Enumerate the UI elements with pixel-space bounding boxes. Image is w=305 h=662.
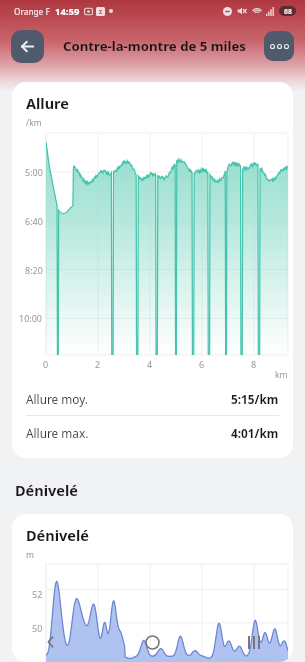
staticText: 50	[32, 622, 43, 634]
button[interactable]: Retour	[11, 30, 44, 63]
staticText: 6:40	[25, 215, 43, 227]
button[interactable]: Plus d'options	[264, 31, 294, 61]
staticText: 2	[95, 358, 101, 370]
staticText: 8:20	[25, 264, 43, 276]
button[interactable]: Retour	[0, 622, 101, 662]
staticText: 14:59	[55, 5, 80, 18]
staticText: 4	[147, 358, 153, 370]
staticText: 4:01/km	[231, 425, 279, 441]
staticText: 68	[284, 7, 292, 16]
button[interactable]: Applications récentes	[203, 622, 305, 662]
staticText: 5:15/km	[231, 391, 279, 407]
staticText: Allure max.	[26, 425, 89, 441]
button[interactable]: Allure moy.	[12, 382, 293, 416]
staticText: km	[275, 369, 288, 381]
staticText: /km	[26, 117, 42, 129]
button[interactable]: Accueil	[101, 622, 203, 662]
staticText: 8	[251, 358, 257, 370]
staticText: 52	[32, 588, 43, 600]
staticText: Contre-la-montre de 5 miles	[63, 37, 246, 55]
staticText: 0	[43, 358, 49, 370]
staticText: Allure moy.	[26, 391, 88, 407]
button[interactable]: Allure max.	[12, 416, 293, 449]
staticText: Allure	[26, 93, 69, 113]
staticText: 5:00	[25, 166, 43, 178]
staticText: Dénivelé	[26, 525, 89, 545]
staticText: Dénivelé	[15, 480, 78, 500]
staticText: 6	[199, 358, 205, 370]
staticText: Σ	[99, 8, 103, 16]
staticText: 10:00	[19, 312, 43, 324]
staticText: m	[26, 549, 34, 561]
button[interactable]: Allure	[12, 82, 293, 458]
button[interactable]: Dénivelé	[12, 514, 293, 662]
staticText: Orange F	[14, 6, 50, 17]
